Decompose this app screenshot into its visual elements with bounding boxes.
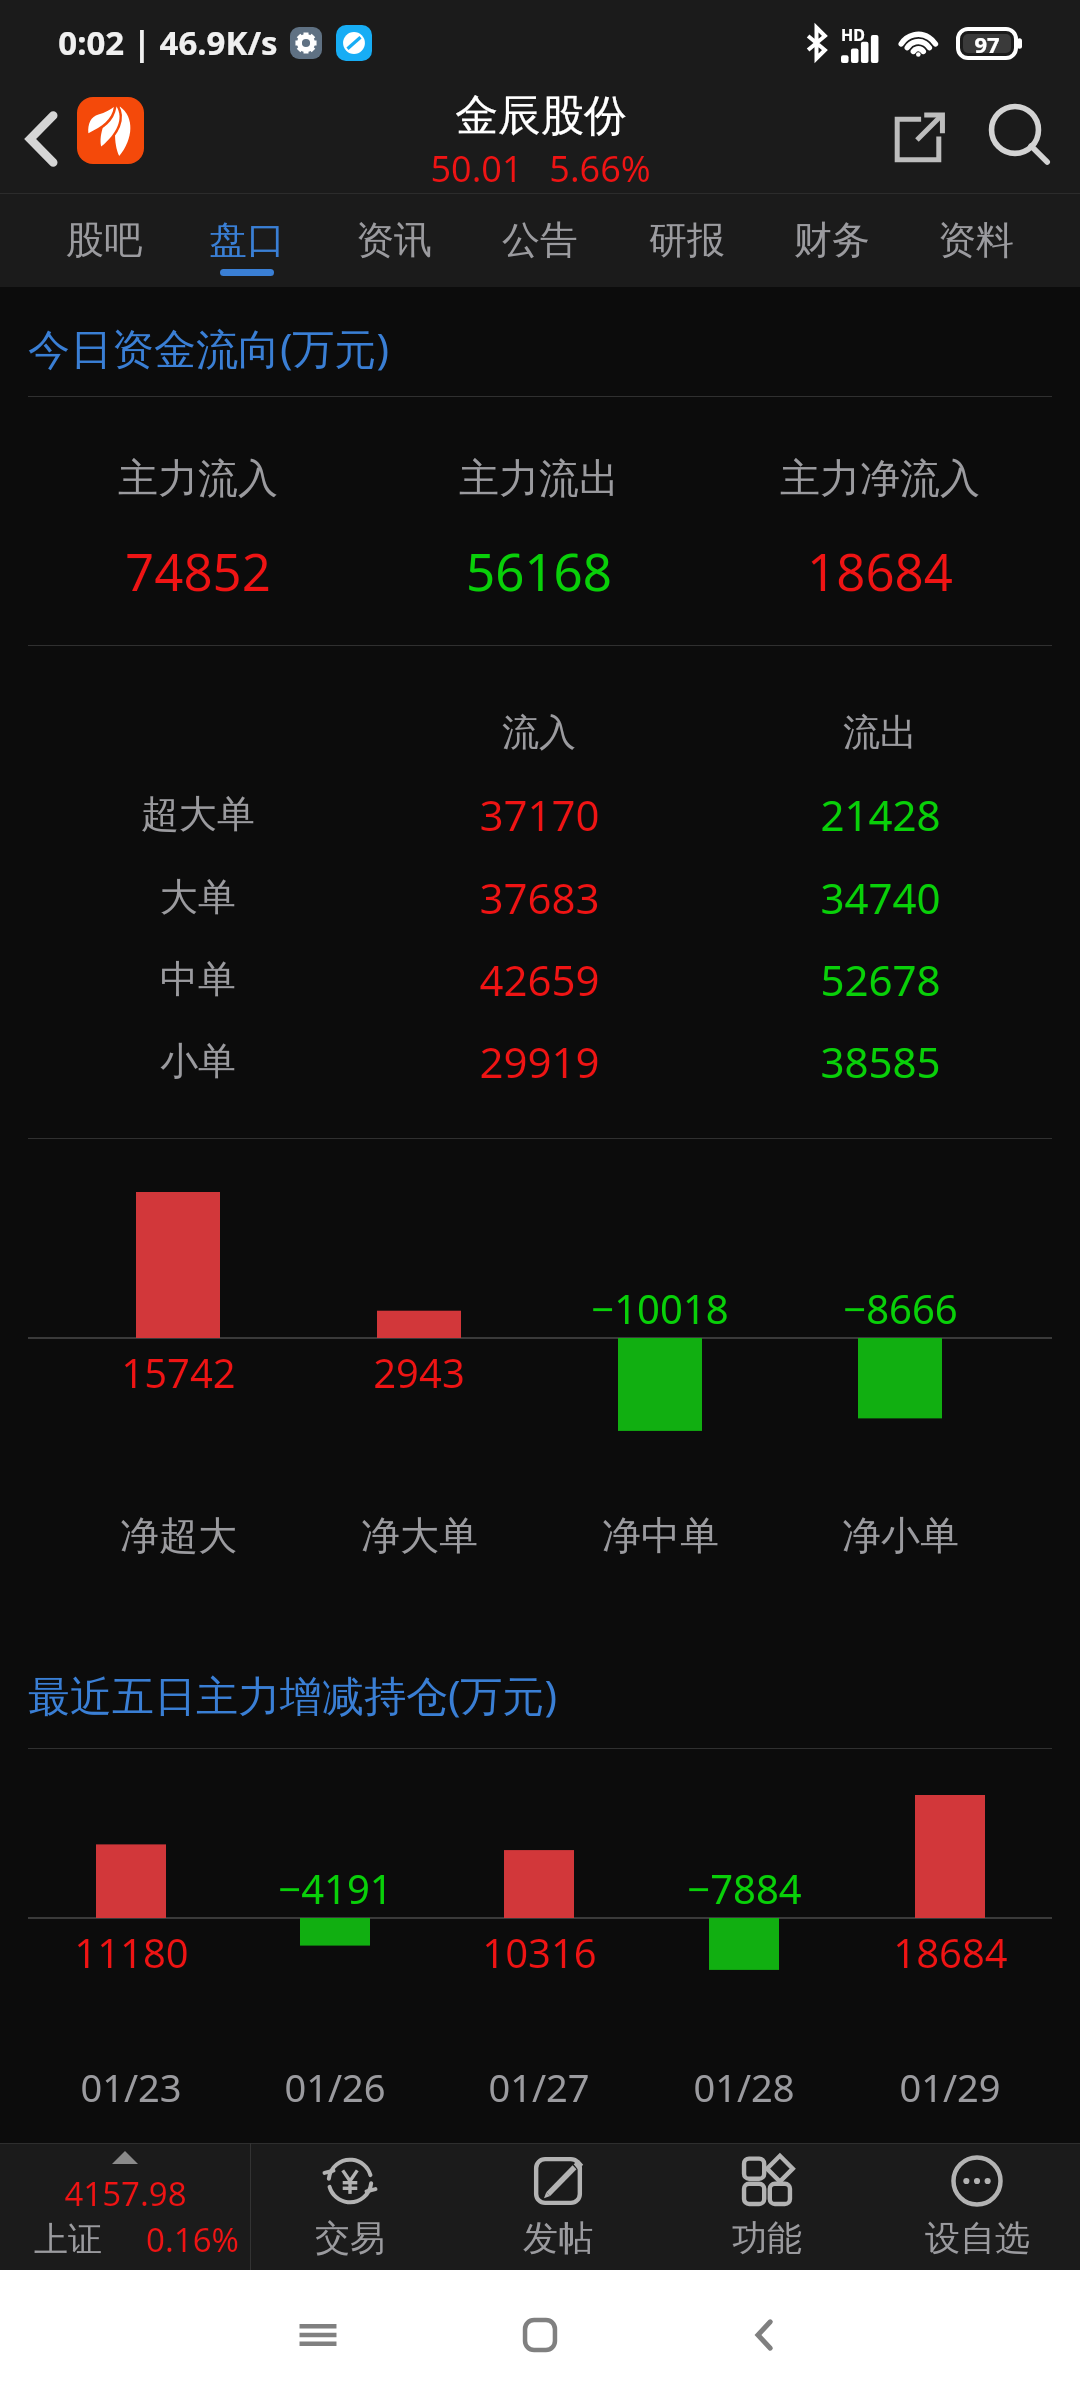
staticText: 18684 <box>893 1925 1008 1979</box>
staticText: −7884 <box>687 1861 802 1915</box>
button[interactable]: Home <box>480 2275 600 2395</box>
button[interactable]: 公告 <box>468 193 612 287</box>
staticText: 4157.98 <box>64 2171 187 2216</box>
staticText: 37170 <box>479 786 600 843</box>
button[interactable]: 股吧 <box>32 193 176 287</box>
staticText: 01/29 <box>899 2061 1001 2113</box>
staticText: 功能 <box>732 2216 802 2260</box>
staticText: HD <box>841 24 865 46</box>
staticText: 0:02 | 46.9K/s <box>58 20 278 65</box>
button[interactable]: Eastmoney <box>77 97 144 164</box>
staticText: 金辰股份 <box>455 89 627 143</box>
staticText: 38585 <box>820 1033 941 1090</box>
staticText: 设自选 <box>925 2216 1030 2260</box>
staticText: 财务 <box>794 216 870 264</box>
staticText: 15742 <box>121 1345 236 1399</box>
staticText: 主力净流入 <box>780 453 980 503</box>
staticText: 74852 <box>125 536 271 605</box>
button[interactable]: Share <box>862 85 974 193</box>
button[interactable] <box>0 1020 1080 1102</box>
button[interactable]: 盘口 <box>175 193 319 287</box>
staticText: 今日资金流向(万元) <box>28 319 390 376</box>
button[interactable] <box>710 440 1050 600</box>
staticText: 资讯 <box>356 216 432 264</box>
staticText: 01/28 <box>693 2061 795 2113</box>
staticText: 18684 <box>807 536 953 605</box>
button[interactable] <box>0 938 1080 1020</box>
staticText: 净中单 <box>602 1511 719 1560</box>
staticText: 34740 <box>820 869 941 926</box>
staticText: 净小单 <box>842 1511 959 1560</box>
staticText: 小单 <box>160 1037 236 1085</box>
staticText: 最近五日主力增减持仓(万元) <box>28 1666 558 1723</box>
staticText: 2943 <box>373 1345 465 1399</box>
button[interactable]: 资讯 <box>322 193 466 287</box>
button[interactable]: Search <box>974 91 1070 187</box>
staticText: 发帖 <box>523 2216 593 2260</box>
button[interactable] <box>0 2143 250 2270</box>
staticText: 56168 <box>466 536 612 605</box>
staticText: 超大单 <box>141 790 255 838</box>
staticText: 42659 <box>479 951 600 1008</box>
button[interactable]: 财务 <box>760 193 904 287</box>
button[interactable]: 研报 <box>615 193 759 287</box>
staticText: 主力流入 <box>118 453 278 503</box>
staticText: 流入 <box>502 709 576 756</box>
button[interactable]: 交易 <box>250 2143 450 2270</box>
staticText: 盘口 <box>209 216 285 264</box>
button[interactable] <box>369 440 709 600</box>
staticText: 主力流出 <box>459 453 619 503</box>
staticText: 净超大 <box>120 1511 237 1560</box>
staticText: 净大单 <box>361 1511 478 1560</box>
staticText: 01/23 <box>80 2061 182 2113</box>
staticText: 37683 <box>479 869 600 926</box>
button[interactable]: Back <box>0 85 82 193</box>
staticText: 29919 <box>479 1033 600 1090</box>
staticText: 11180 <box>74 1925 189 1979</box>
staticText: −10018 <box>591 1281 729 1335</box>
staticText: 0.16% <box>146 2217 239 2262</box>
button[interactable]: 资料 <box>904 193 1048 287</box>
staticText: 中单 <box>160 955 236 1003</box>
button[interactable]: Back <box>705 2275 825 2395</box>
staticText: −8666 <box>843 1281 958 1335</box>
staticText: 01/26 <box>284 2061 386 2113</box>
button[interactable] <box>0 856 1080 938</box>
staticText: 股吧 <box>66 216 142 264</box>
staticText: 大单 <box>160 873 236 921</box>
staticText: 上证 <box>34 2218 102 2261</box>
staticText: 研报 <box>649 216 725 264</box>
staticText: 21428 <box>820 786 941 843</box>
staticText: 50.01 <box>430 144 523 193</box>
staticText: 流出 <box>843 709 917 756</box>
staticText: 01/27 <box>488 2061 590 2113</box>
staticText: 97 <box>974 29 1000 59</box>
button[interactable]: 发帖 <box>458 2143 658 2270</box>
staticText: 5.66% <box>549 144 651 193</box>
staticText: 52678 <box>820 951 941 1008</box>
staticText: 公告 <box>502 216 578 264</box>
button[interactable] <box>0 773 1080 855</box>
button[interactable]: Recents <box>258 2275 378 2395</box>
staticText: 10316 <box>482 1925 597 1979</box>
staticText: −4191 <box>278 1861 393 1915</box>
button[interactable] <box>28 440 368 600</box>
button[interactable]: 功能 <box>667 2143 867 2270</box>
staticText: 交易 <box>315 2216 385 2260</box>
staticText: 资料 <box>938 216 1014 264</box>
button[interactable]: 设自选 <box>877 2143 1077 2270</box>
